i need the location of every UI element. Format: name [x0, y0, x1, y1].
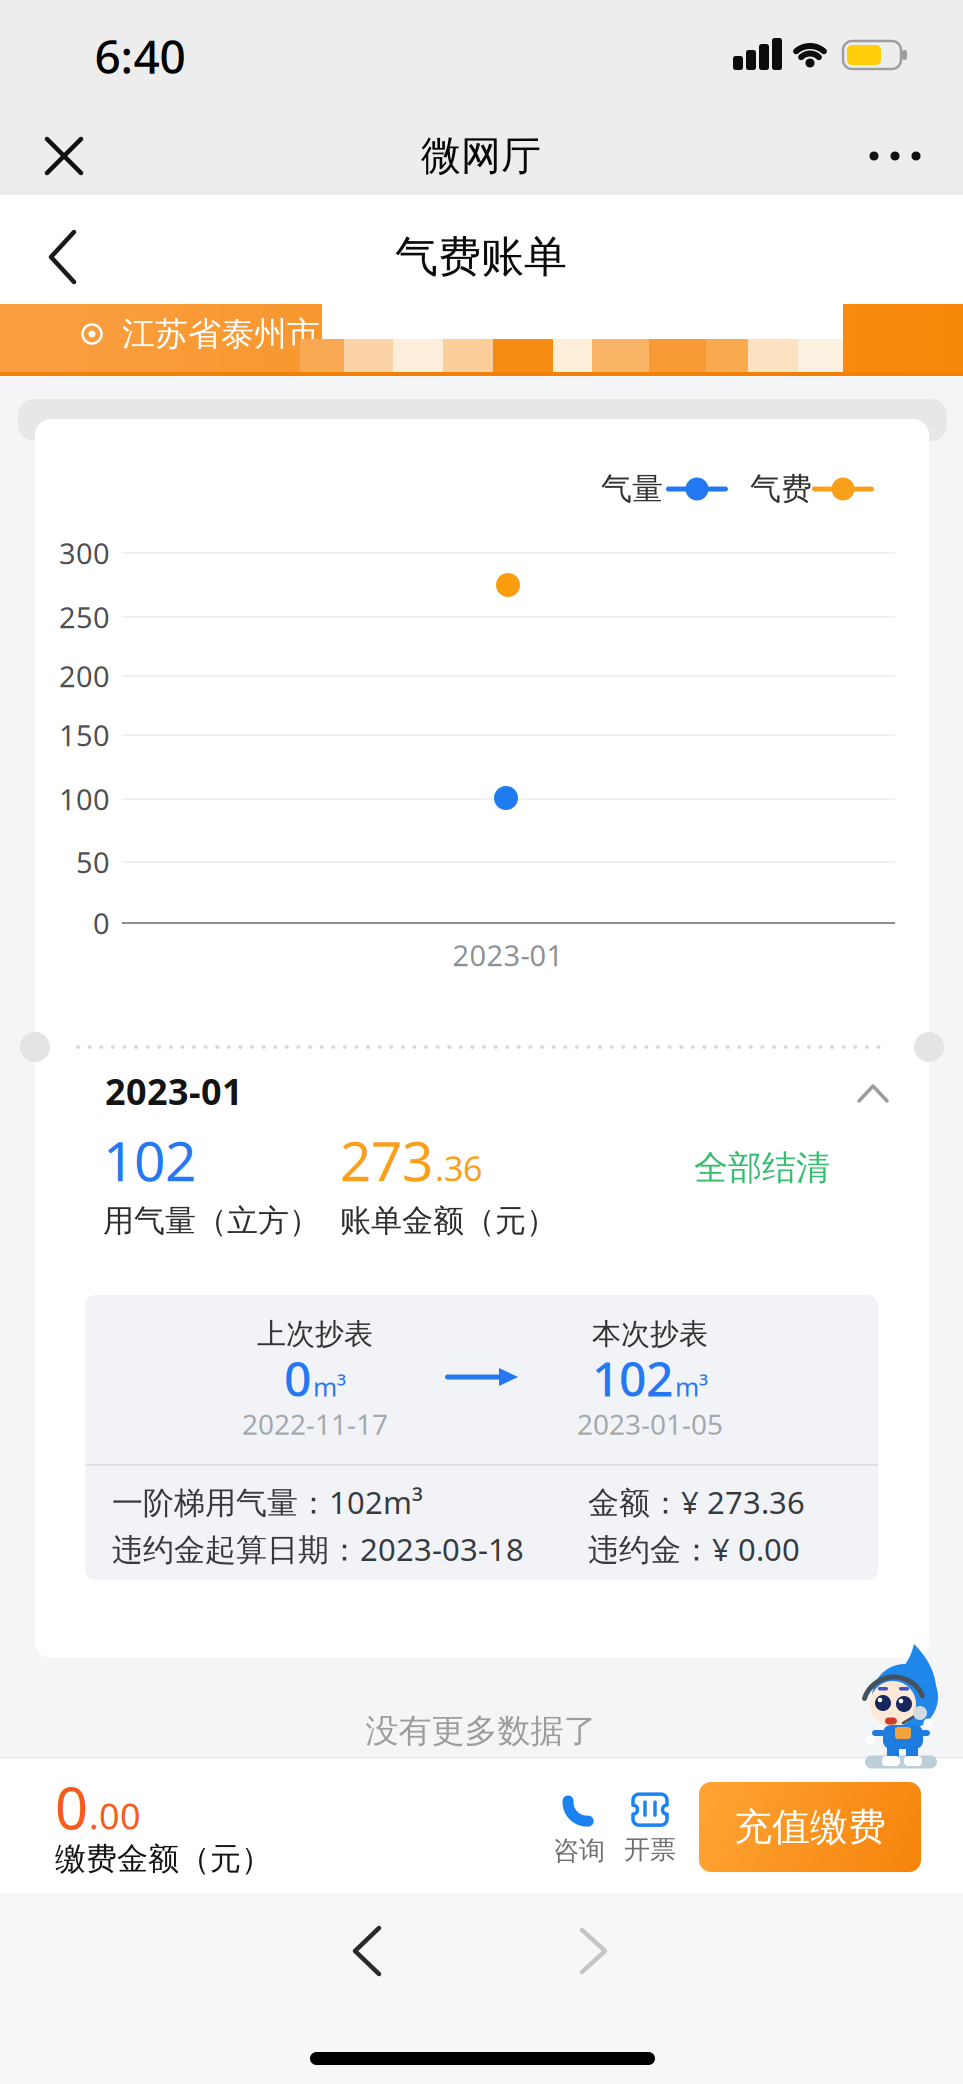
staticText: 250 [59, 597, 110, 637]
staticText: 全部结清 [694, 1147, 830, 1189]
button[interactable]: Forward [564, 1919, 624, 1983]
staticText: 150 [59, 715, 110, 755]
staticText: 300 [59, 533, 110, 573]
staticText: 没有更多数据了 [365, 1710, 596, 1752]
button[interactable]: Back [337, 1919, 397, 1983]
staticText: .00 [89, 1791, 141, 1840]
button[interactable]: Close [36, 128, 92, 184]
staticText: 充值缴费 [734, 1803, 886, 1851]
staticText: 0 [55, 1767, 88, 1846]
staticText: 一阶梯用气量：102m³ [112, 1481, 423, 1523]
staticText: 账单金额（元） [340, 1201, 557, 1241]
staticText: 0 [284, 1345, 311, 1411]
staticText: 2023-01 [105, 1066, 243, 1115]
staticText: 微网厅 [421, 131, 541, 181]
staticText: 违约金起算日期：2023-03-18 [112, 1528, 524, 1570]
staticText: 2022-11-17 [242, 1405, 388, 1443]
button[interactable]: Collapse [849, 1073, 897, 1113]
staticText: 102 [592, 1345, 673, 1411]
staticText: 2023-01 [452, 935, 563, 975]
staticText: 气费账单 [395, 230, 567, 284]
staticText: 江苏省泰州市 [122, 313, 320, 355]
staticText: 开票 [624, 1833, 676, 1866]
button[interactable]: Back [35, 225, 91, 289]
staticText: 金额：¥ 273.36 [588, 1481, 805, 1523]
staticText: 50 [76, 842, 110, 882]
staticText: 气量 [601, 469, 663, 509]
staticText: 用气量（立方） [103, 1201, 320, 1241]
staticText: 200 [59, 656, 110, 696]
staticText: 6:40 [94, 25, 185, 87]
staticText: .36 [435, 1145, 482, 1191]
staticText: 0 [93, 903, 110, 943]
staticText: 上次抄表 [257, 1316, 373, 1352]
staticText: 气费 [750, 469, 812, 509]
staticText: 本次抄表 [592, 1316, 708, 1352]
button[interactable]: 开票 [618, 1786, 682, 1874]
staticText: 咨询 [553, 1834, 605, 1867]
staticText: 2023-01-05 [577, 1405, 723, 1443]
staticText: m³ [675, 1369, 708, 1404]
staticText: 273 [340, 1122, 433, 1197]
button[interactable]: 咨询 [547, 1786, 611, 1874]
staticText: 缴费金额（元） [55, 1839, 272, 1879]
button[interactable]: 充值缴费 [699, 1782, 921, 1872]
staticText: 102 [103, 1122, 196, 1197]
staticText: m³ [313, 1369, 346, 1404]
staticText: 100 [59, 779, 110, 819]
staticText: 违约金：¥ 0.00 [588, 1528, 800, 1570]
button[interactable]: More [863, 134, 927, 178]
